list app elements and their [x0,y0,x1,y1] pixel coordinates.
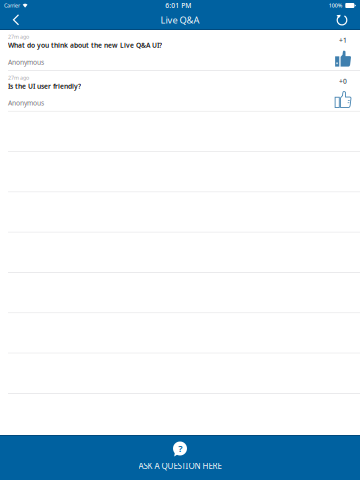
staticText: +0 [339,77,347,86]
staticText: Anonymous [8,98,44,107]
button[interactable]: 27m ago [0,71,163,111]
staticText: 100% [329,2,343,9]
button[interactable]: Refresh [330,10,354,29]
staticText: 27m ago [8,33,29,40]
button[interactable]: Upvote [326,71,360,111]
staticText: +1 [339,36,347,45]
button[interactable]: 27m ago [0,30,163,70]
staticText: ? [178,442,182,455]
staticText: Live Q&A [160,14,199,26]
staticText: Is the UI user friendly? [8,82,81,91]
button[interactable]: Upvote [326,30,360,70]
staticText: What do you think about the new Live Q&A… [8,41,162,50]
button[interactable]: ? [0,435,360,480]
button[interactable]: Back [3,10,29,29]
staticText: 6:01 PM [165,1,191,10]
staticText: 27m ago [8,74,29,81]
staticText: Carrier [4,2,20,9]
staticText: ASK A QUESTION HERE [138,460,221,471]
staticText: Anonymous [8,58,44,66]
